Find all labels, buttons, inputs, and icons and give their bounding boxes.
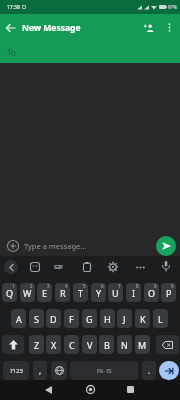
staticText: E (42, 287, 48, 299)
staticText: Type a message... (24, 241, 87, 251)
button[interactable]: Q (2, 283, 17, 302)
button[interactable]: GIF (50, 260, 67, 273)
staticText: N (121, 339, 128, 351)
staticText: EN · ES (97, 368, 112, 374)
button[interactable]: M (135, 335, 150, 354)
button[interactable]: T (73, 283, 88, 302)
button[interactable] (159, 260, 172, 273)
button[interactable] (142, 21, 156, 35)
staticText: X (51, 339, 57, 351)
staticText: 6 (101, 283, 104, 289)
button[interactable] (107, 261, 119, 273)
button[interactable] (51, 361, 67, 380)
button[interactable]: P (161, 283, 176, 302)
button[interactable]: Y (91, 283, 106, 302)
staticText: R (60, 287, 66, 299)
staticText: , (39, 365, 42, 376)
staticText: J (123, 313, 126, 325)
button[interactable]: C (64, 335, 79, 354)
button[interactable]: S (29, 309, 44, 328)
staticText: I (132, 287, 136, 299)
staticText: D (50, 313, 57, 325)
button[interactable]: F (64, 309, 79, 328)
staticText: U (112, 287, 119, 299)
staticText: 9 (154, 283, 157, 289)
staticText: 97% (168, 4, 177, 10)
button[interactable]: H (100, 309, 115, 328)
button[interactable] (4, 260, 18, 274)
button[interactable] (156, 236, 176, 256)
button[interactable]: O (144, 283, 159, 302)
staticText: 7 (118, 283, 121, 289)
button[interactable]: D (46, 309, 61, 328)
button[interactable]: EN · ES (70, 361, 138, 380)
button[interactable]: , (33, 361, 47, 380)
staticText: 8 (136, 283, 139, 289)
staticText: H (104, 313, 111, 325)
button[interactable] (165, 23, 174, 32)
button[interactable]: U (108, 283, 123, 302)
staticText: S (34, 313, 39, 325)
button[interactable] (124, 383, 137, 396)
button[interactable] (156, 335, 179, 354)
staticText: 3 (47, 283, 50, 289)
staticText: W (23, 287, 32, 299)
staticText: ?123 (10, 367, 23, 375)
staticText: Q (6, 287, 14, 299)
staticText: To (7, 47, 16, 58)
button[interactable]: N (117, 335, 132, 354)
staticText: O (148, 287, 156, 299)
staticText: New Message (22, 22, 81, 34)
staticText: L (158, 313, 163, 325)
staticText: C (69, 339, 75, 351)
staticText: 0 (171, 283, 174, 289)
staticText: A (16, 313, 22, 325)
button[interactable]: B (99, 335, 114, 354)
button[interactable] (84, 383, 97, 396)
button[interactable]: X (46, 335, 61, 354)
button[interactable] (134, 261, 147, 273)
button[interactable]: K (135, 309, 150, 328)
button[interactable]: E (37, 283, 52, 302)
staticText: M (138, 339, 147, 351)
staticText: K (140, 313, 146, 325)
button[interactable] (4, 22, 16, 34)
staticText: 5 (83, 283, 86, 289)
staticText: 17:38 (7, 4, 20, 11)
button[interactable]: J (117, 309, 132, 328)
button[interactable]: V (82, 335, 97, 354)
button[interactable]: . (142, 361, 156, 380)
button[interactable] (29, 261, 41, 273)
button[interactable]: L (153, 309, 168, 328)
button[interactable]: ?123 (3, 361, 29, 380)
staticText: 1 (12, 283, 15, 289)
button[interactable] (159, 361, 179, 380)
staticText: T (78, 287, 84, 299)
staticText: F (69, 313, 74, 325)
button[interactable]: A (11, 309, 26, 328)
staticText: 4 (65, 283, 68, 289)
button[interactable] (2, 335, 24, 354)
staticText: GIF (54, 263, 64, 270)
button[interactable]: G (82, 309, 97, 328)
staticText: G (86, 313, 93, 325)
button[interactable]: I (126, 283, 141, 302)
button[interactable]: W (20, 283, 35, 302)
staticText: Z (34, 339, 40, 351)
button[interactable] (42, 383, 55, 396)
button[interactable] (81, 261, 93, 273)
staticText: P (166, 287, 172, 299)
staticText: V (87, 339, 93, 351)
staticText: 2 (30, 283, 33, 289)
staticText: B (104, 339, 110, 351)
button[interactable]: Z (29, 335, 44, 354)
staticText: Y (96, 287, 102, 299)
button[interactable]: R (55, 283, 70, 302)
staticText: . (148, 365, 151, 376)
